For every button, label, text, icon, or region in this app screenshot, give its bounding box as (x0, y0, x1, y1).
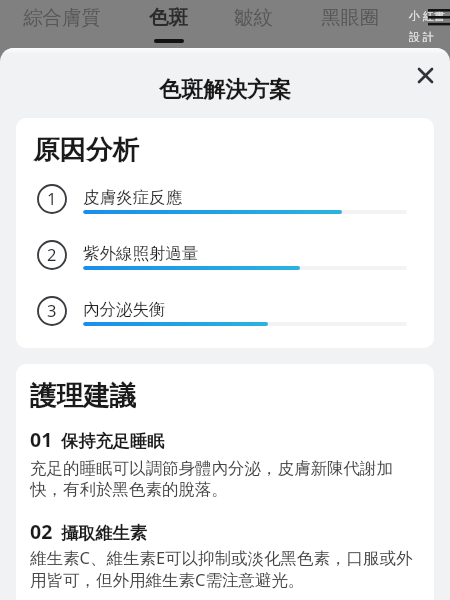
staticText: 皮膚炎症反應 (83, 188, 182, 208)
button[interactable]: 黑眼圈 (321, 7, 380, 39)
staticText: 1 (47, 190, 57, 209)
staticText: 小 紅書 (409, 10, 445, 23)
staticText: 色斑解決方案 (159, 77, 291, 103)
staticText: 01 (30, 431, 53, 452)
staticText: 護理建議 (30, 381, 136, 413)
staticText: 3 (47, 302, 57, 321)
staticText: 充足的睡眠可以調節身體內分泌，皮膚新陳代謝加快，有利於黑色素的脫落。 (30, 458, 420, 500)
staticText: 維生素C、維生素E可以抑制或淡化黑色素，口服或外用皆可，但外用維生素C需注意避光… (30, 547, 420, 591)
staticText: 設 計 (409, 31, 434, 44)
staticText: 綜合膚質 (23, 7, 101, 30)
staticText: 保持充足睡眠 (61, 431, 165, 452)
staticText: 原因分析 (33, 135, 139, 167)
staticText: 2 (47, 246, 57, 265)
button[interactable]: 綜合膚質 (23, 7, 101, 39)
staticText: 紫外線照射過量 (83, 244, 199, 264)
staticText: 02 (30, 523, 53, 544)
staticText: 內分泌失衡 (83, 300, 166, 320)
button[interactable]: 皺紋 (234, 7, 273, 39)
staticText: 攝取維生素 (61, 523, 147, 544)
button[interactable]: 色斑 (149, 7, 188, 43)
staticText: 皺紋 (234, 7, 273, 30)
button[interactable]: Close (411, 61, 439, 89)
staticText: 黑眼圈 (321, 7, 380, 30)
staticText: 色斑 (149, 7, 188, 30)
